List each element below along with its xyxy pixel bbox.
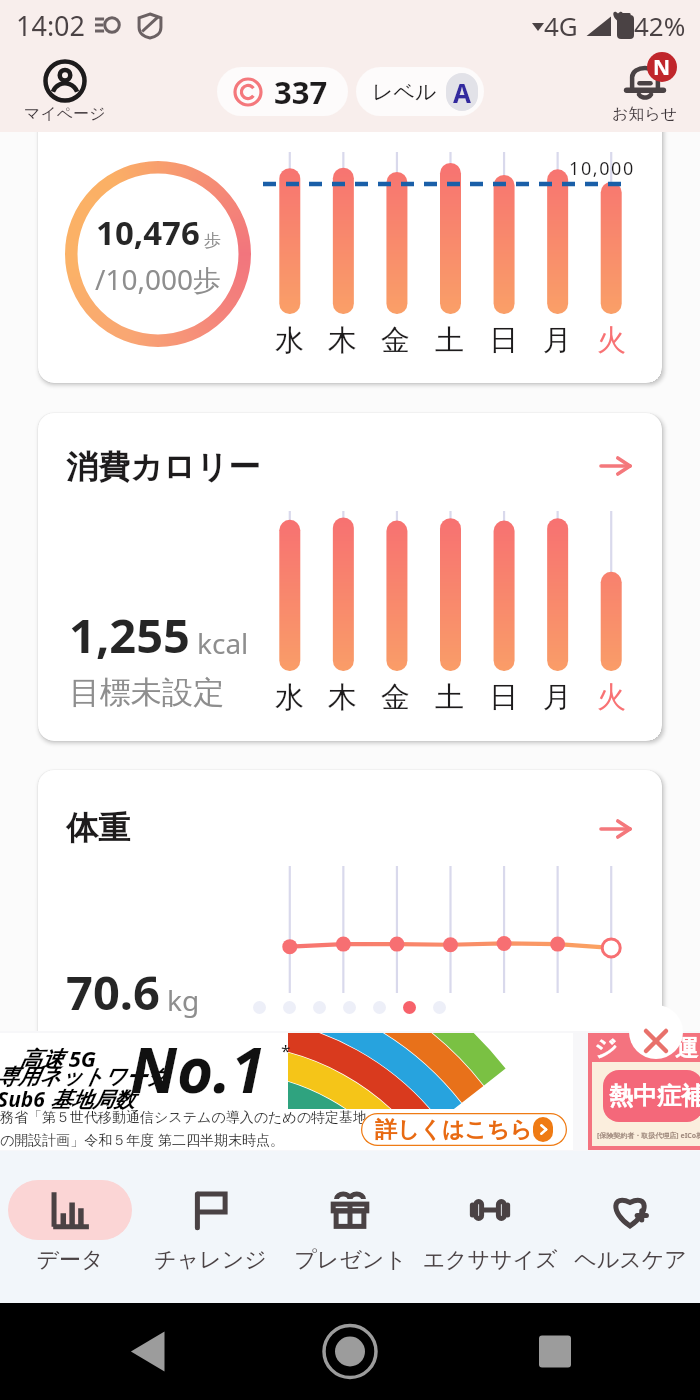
button[interactable]: ジ	[588, 1033, 700, 1150]
staticText: エクササイズ	[422, 1246, 558, 1274]
staticText: チャレンジ	[154, 1246, 267, 1274]
staticText: ジ	[594, 1034, 618, 1063]
staticText: 高速 5G	[19, 1043, 97, 1073]
staticText: 目標未設定	[69, 673, 224, 712]
button[interactable]: 詳しくはこちら	[361, 1113, 567, 1146]
button[interactable]: お知らせ	[606, 58, 684, 124]
staticText: 専用ネットワーク	[0, 1064, 168, 1090]
staticText: 日	[489, 679, 518, 716]
staticText: 体重	[66, 808, 130, 848]
staticText: 火	[597, 679, 626, 716]
staticText: ヘルスケア	[574, 1246, 687, 1274]
staticText: 木	[328, 679, 357, 716]
staticText: 月	[543, 322, 572, 359]
staticText: マイページ	[24, 104, 106, 124]
staticText: kcal	[197, 624, 249, 662]
staticText: 火	[597, 322, 626, 359]
staticText: 運	[675, 1034, 698, 1063]
staticText: 土	[435, 322, 464, 359]
staticText: 土	[435, 679, 464, 716]
staticText: 金	[381, 679, 410, 716]
staticText: 70.6	[66, 960, 160, 1024]
staticText: 337	[274, 71, 328, 113]
button[interactable]: マイページ	[18, 59, 112, 124]
staticText: 木	[328, 322, 357, 359]
staticText: kg	[167, 981, 200, 1019]
staticText: /10,000歩	[95, 260, 222, 298]
button[interactable]: 337	[217, 67, 348, 116]
staticText: 務省「第５世代移動通信システムの導入のための特定基地	[0, 1109, 367, 1127]
staticText: 14:02	[16, 7, 86, 44]
button[interactable]: エクササイズ	[420, 1180, 560, 1274]
staticText: 詳しくはこちら	[375, 1116, 533, 1144]
staticText: 熱中症補	[609, 1081, 700, 1111]
staticText: 1,255	[69, 603, 190, 667]
button[interactable]: チャレンジ	[140, 1180, 280, 1274]
button[interactable]: データ	[0, 1180, 140, 1274]
staticText: 金	[381, 322, 410, 359]
staticText: Sub6 基地局数	[0, 1085, 135, 1114]
staticText: 42%	[634, 8, 686, 43]
staticText: 消費カロリー	[66, 447, 261, 487]
staticText: レベル	[372, 79, 437, 105]
button[interactable]: レベル	[356, 67, 484, 116]
button[interactable]: 10,476	[38, 72, 662, 383]
staticText: A	[453, 75, 471, 110]
button[interactable]: 体重	[38, 770, 662, 1070]
button[interactable]: ヘルスケア	[560, 1180, 700, 1274]
staticText: 月	[543, 679, 572, 716]
staticText: 歩	[204, 230, 221, 251]
button[interactable]: 消費カロリー	[38, 413, 662, 741]
staticText: お知らせ	[612, 104, 678, 124]
staticText: No.1	[130, 1033, 266, 1111]
staticText: 10,000	[569, 156, 635, 181]
staticText: 水	[275, 679, 304, 716]
staticText: [保険契約者・取扱代理店] eICo株式会	[597, 1131, 700, 1141]
staticText: 4G	[544, 8, 578, 43]
staticText: データ	[36, 1246, 104, 1274]
staticText: 日	[489, 322, 518, 359]
button[interactable]: 高速 5G	[0, 1033, 573, 1150]
staticText: の開設計画」令和５年度 第二四半期末時点。	[0, 1130, 284, 1149]
staticText: 10,476	[96, 210, 200, 255]
staticText: 水	[275, 322, 304, 359]
button[interactable]: プレゼント	[280, 1180, 420, 1274]
staticText: N	[653, 53, 671, 82]
staticText: プレゼント	[294, 1246, 407, 1274]
staticText: *	[281, 1039, 291, 1062]
button[interactable]: Close ad	[629, 1005, 683, 1059]
